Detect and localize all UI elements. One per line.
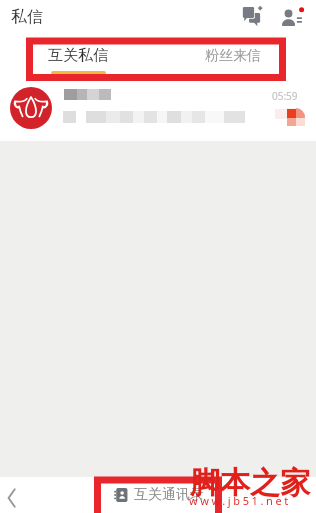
button[interactable]: Contacts: [278, 4, 306, 32]
staticText: www.jb51.net: [189, 493, 291, 508]
staticText: 互关通讯录: [134, 486, 204, 504]
staticText: 05:59: [272, 89, 298, 103]
staticText: 互关私信: [48, 46, 108, 65]
button[interactable]: 05:59: [0, 78, 316, 141]
staticText: 脚本之家: [190, 464, 310, 502]
staticText: 私信: [11, 7, 43, 27]
button[interactable]: 互关私信: [34, 33, 129, 78]
staticText: 粉丝来信: [205, 47, 261, 65]
button[interactable]: 互关通讯录: [114, 480, 204, 510]
button[interactable]: New message: [237, 2, 265, 30]
button[interactable]: 粉丝来信: [185, 33, 280, 78]
button[interactable]: Back: [0, 483, 28, 513]
